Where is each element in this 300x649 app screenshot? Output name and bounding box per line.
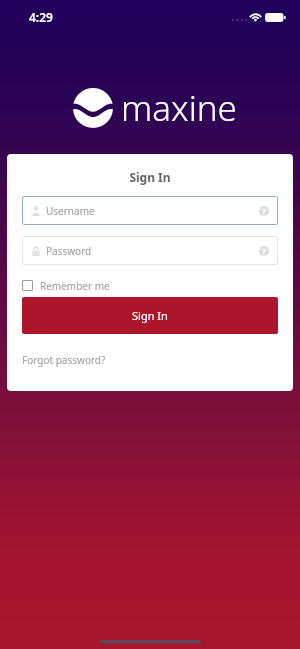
staticText: Remember me [40, 279, 110, 291]
button[interactable]: Sign In [22, 297, 278, 334]
button[interactable]: Help [259, 206, 269, 216]
button[interactable]: Help [259, 246, 269, 256]
staticText: 4:29 [29, 9, 53, 25]
staticText: Username [46, 204, 95, 218]
staticText: ? [262, 206, 266, 216]
staticText: Sign In [132, 308, 168, 323]
staticText: Password [46, 244, 92, 258]
button[interactable]: Remember me [22, 279, 110, 291]
staticText: maxine [121, 84, 237, 132]
button[interactable]: Username [22, 196, 278, 225]
staticText: ? [262, 246, 266, 256]
staticText: Sign In [7, 169, 293, 185]
button[interactable]: Forgot password? [22, 353, 106, 367]
button[interactable]: Password [22, 236, 278, 265]
